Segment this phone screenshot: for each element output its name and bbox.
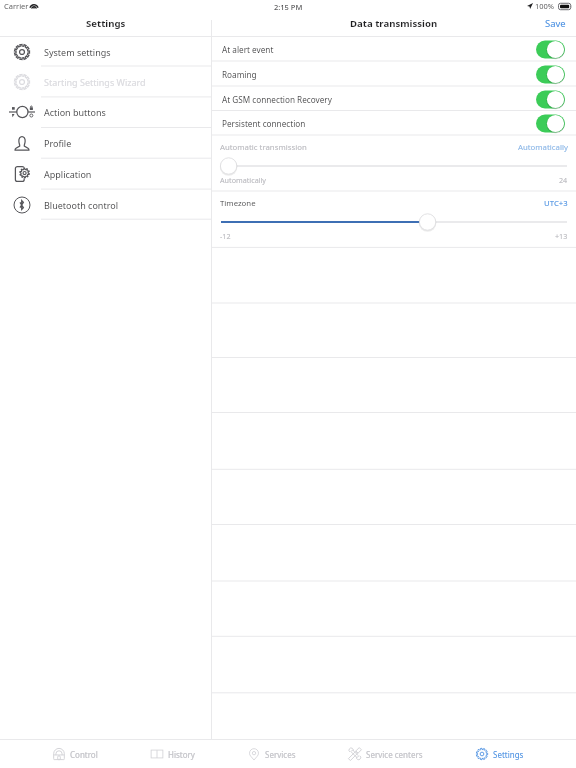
button[interactable]: System settings (0, 37, 211, 67)
button[interactable]: Action buttons (0, 97, 211, 127)
button[interactable]: Save (535, 16, 576, 31)
button[interactable]: Starting Settings Wizard (0, 67, 211, 97)
button[interactable]: Roaming (212, 62, 576, 86)
staticText: Service centers (366, 749, 423, 760)
staticText: Application (44, 168, 92, 180)
staticText: 100% (535, 1, 555, 11)
button[interactable]: Application (0, 159, 211, 189)
button[interactable]: At alert event (212, 37, 576, 61)
staticText: Roaming (222, 69, 257, 80)
button[interactable] (221, 211, 567, 233)
staticText: Data transmission (350, 17, 438, 30)
button[interactable]: Services (247, 740, 296, 768)
staticText: Starting Settings Wizard (44, 76, 146, 88)
staticText: History (168, 749, 195, 760)
button[interactable]: Bluetooth control (0, 190, 211, 220)
staticText: Automatically (518, 142, 568, 153)
button[interactable]: Settings (475, 740, 524, 768)
staticText: Services (265, 749, 296, 760)
staticText: At alert event (222, 44, 274, 55)
staticText: System settings (44, 46, 111, 58)
staticText: 2:15 PM (274, 2, 303, 12)
button[interactable]: At GSM connection Recovery (212, 87, 576, 111)
button[interactable]: Control (52, 740, 98, 768)
staticText: Carrier (4, 1, 29, 11)
staticText: Control (70, 749, 98, 760)
button[interactable]: Profile (0, 128, 211, 158)
staticText: +13 (555, 231, 568, 241)
staticText: UTC+3 (544, 198, 568, 209)
button[interactable]: History (150, 740, 195, 768)
staticText: Persistent connection (222, 118, 306, 129)
button[interactable] (221, 155, 567, 177)
staticText: -12 (220, 231, 231, 241)
staticText: Action buttons (44, 106, 106, 118)
staticText: Settings (493, 749, 524, 760)
staticText: Save (545, 17, 566, 30)
staticText: At GSM connection Recovery (222, 94, 332, 105)
staticText: 24 (559, 175, 568, 185)
staticText: Bluetooth control (44, 199, 118, 211)
staticText: Settings (86, 17, 126, 30)
staticText: Timezone (220, 198, 256, 209)
staticText: Automatic transmission (220, 142, 307, 153)
button[interactable]: Persistent connection (212, 111, 576, 135)
button[interactable]: Service centers (348, 740, 423, 768)
staticText: Profile (44, 137, 72, 149)
staticText: Automatically (220, 175, 267, 185)
